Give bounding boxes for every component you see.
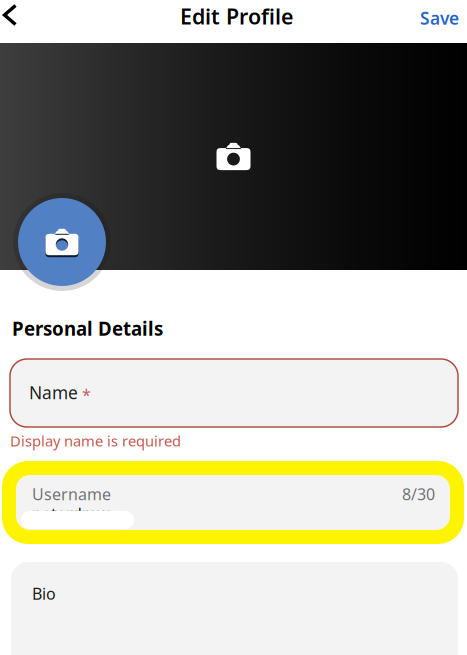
staticText: Save (420, 6, 459, 29)
staticText: 8/30 (402, 483, 435, 505)
button[interactable]: Name (10, 359, 458, 427)
button[interactable]: Save (399, 0, 459, 36)
button[interactable]: Back (0, 0, 25, 33)
staticText: Personal Details (12, 316, 163, 341)
button[interactable]: Bio (11, 562, 458, 655)
staticText: Name (29, 381, 78, 404)
button[interactable]: Username (16, 475, 450, 530)
button[interactable]: Change profile photo (13, 193, 111, 291)
staticText: Bio (32, 583, 56, 604)
staticText: Display name is required (10, 431, 181, 450)
button[interactable]: Change cover photo (0, 43, 467, 270)
staticText: peterdraw (32, 503, 110, 524)
staticText: Edit Profile (180, 2, 293, 30)
staticText: Username (32, 483, 111, 505)
staticText: * (82, 384, 91, 405)
